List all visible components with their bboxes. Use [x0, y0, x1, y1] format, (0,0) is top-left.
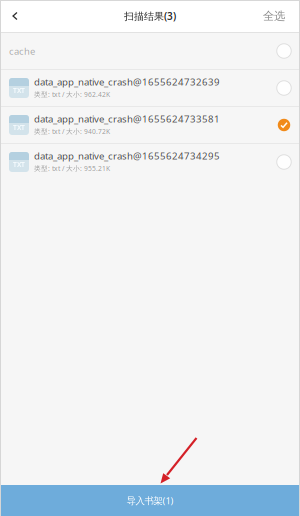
- staticText: 类型: txt / 大小: 962.42K: [34, 90, 110, 99]
- staticText: 扫描结果(3): [124, 9, 176, 23]
- button[interactable]: TXT: [0, 107, 300, 143]
- button[interactable]: TXT: [0, 144, 300, 180]
- button[interactable]: cache: [0, 33, 300, 69]
- staticText: cache: [9, 45, 35, 57]
- button[interactable]: 全选: [263, 0, 300, 32]
- staticText: 全选: [263, 9, 285, 23]
- staticText: data_app_native_crash@1655624734295: [34, 149, 220, 162]
- button[interactable]: 导入书架(1): [0, 485, 300, 516]
- staticText: TXT: [13, 86, 25, 95]
- staticText: data_app_native_crash@1655624732639: [34, 75, 220, 88]
- button[interactable]: TXT: [0, 70, 300, 106]
- staticText: data_app_native_crash@1655624733581: [34, 112, 220, 125]
- staticText: 导入书架(1): [126, 494, 173, 507]
- staticText: 类型: txt / 大小: 940.72K: [34, 127, 110, 136]
- staticText: TXT: [13, 123, 25, 132]
- button[interactable]: Back: [0, 0, 30, 32]
- staticText: 类型: txt / 大小: 955.21K: [34, 164, 110, 173]
- staticText: TXT: [13, 160, 25, 169]
